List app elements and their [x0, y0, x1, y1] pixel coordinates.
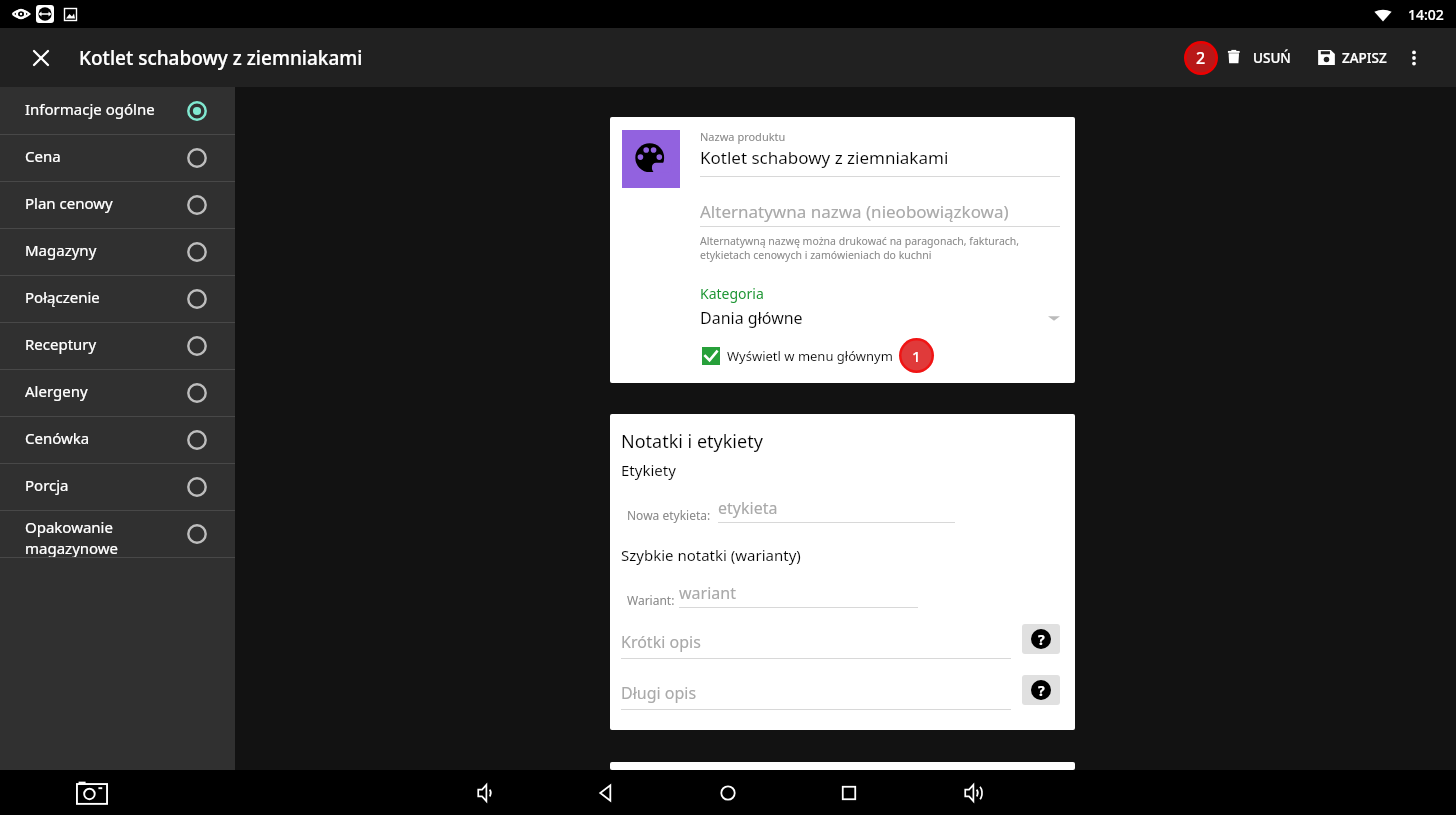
button[interactable]: More options — [1402, 46, 1426, 70]
button[interactable]: Plan cenowy — [0, 182, 235, 229]
staticText: ? — [1038, 681, 1045, 700]
button[interactable]: Home — [706, 771, 750, 815]
button[interactable]: Receptury — [0, 323, 235, 370]
button[interactable]: Volume up — [949, 771, 993, 815]
staticText: Dania główne — [700, 307, 803, 329]
staticText: Długi opis — [621, 682, 697, 704]
staticText: Etykiety — [621, 460, 676, 480]
staticText: USUŃ — [1253, 49, 1291, 67]
staticText: Nowa etykieta: — [627, 507, 711, 523]
button[interactable]: Close — [17, 34, 65, 82]
button[interactable]: Screenshot — [70, 771, 114, 815]
staticText: Receptury — [25, 334, 97, 354]
staticText: Krótki opis — [621, 631, 701, 653]
staticText: Informacje ogólne — [25, 99, 155, 119]
button[interactable]: Magazyny — [0, 229, 235, 276]
staticText: Cenówka — [25, 428, 90, 448]
staticText: Szybkie notatki (warianty) — [621, 545, 801, 565]
staticText: Porcja — [25, 475, 69, 495]
staticText: Alternatywną nazwę można drukować na par… — [700, 234, 1060, 262]
button[interactable]: Połączenie — [0, 276, 235, 323]
button[interactable]: Opakowanie magazynowe — [0, 511, 235, 558]
button[interactable]: Alergeny — [0, 370, 235, 417]
staticText: Kategoria — [700, 284, 764, 303]
staticText: Opakowanie magazynowe — [25, 517, 119, 559]
button[interactable]: Recents — [827, 771, 871, 815]
button[interactable]: Cenówka — [0, 417, 235, 464]
staticText: Plan cenowy — [25, 193, 113, 213]
button[interactable]: Porcja — [0, 464, 235, 511]
staticText: ZAPISZ — [1342, 49, 1387, 67]
staticText: Kotlet schabowy z ziemniakami — [79, 45, 363, 71]
button[interactable]: Help — [1022, 675, 1060, 705]
staticText: 1 — [912, 346, 921, 366]
staticText: Wariant: — [627, 592, 675, 608]
button[interactable]: Cena — [0, 135, 235, 182]
staticText: Notatki i etykiety — [621, 429, 763, 454]
staticText: Alergeny — [25, 381, 88, 401]
button[interactable]: ZAPISZ — [1312, 40, 1392, 75]
button[interactable]: Informacje ogólne — [0, 88, 235, 135]
staticText: 2 — [1196, 47, 1206, 69]
button[interactable]: Help — [1022, 624, 1060, 654]
button[interactable]: Volume down — [462, 771, 506, 815]
staticText: ? — [1038, 630, 1045, 649]
staticText: etykieta — [718, 497, 778, 519]
staticText: Nazwa produktu — [700, 129, 786, 144]
staticText: wariant — [679, 582, 736, 604]
staticText: Kotlet schabowy z ziemniakami — [700, 146, 949, 169]
staticText: Magazyny — [25, 240, 97, 260]
button[interactable]: Back — [584, 771, 628, 815]
button[interactable]: Wyświetl w menu głównym — [700, 347, 893, 365]
staticText: Połączenie — [25, 287, 100, 307]
staticText: 14:02 — [1408, 5, 1444, 24]
staticText: Wyświetl w menu głównym — [727, 347, 893, 365]
staticText: Alternatywna nazwa (nieobowiązkowa) — [700, 200, 1009, 223]
staticText: Cena — [25, 146, 61, 166]
button[interactable]: USUŃ — [1221, 40, 1296, 75]
